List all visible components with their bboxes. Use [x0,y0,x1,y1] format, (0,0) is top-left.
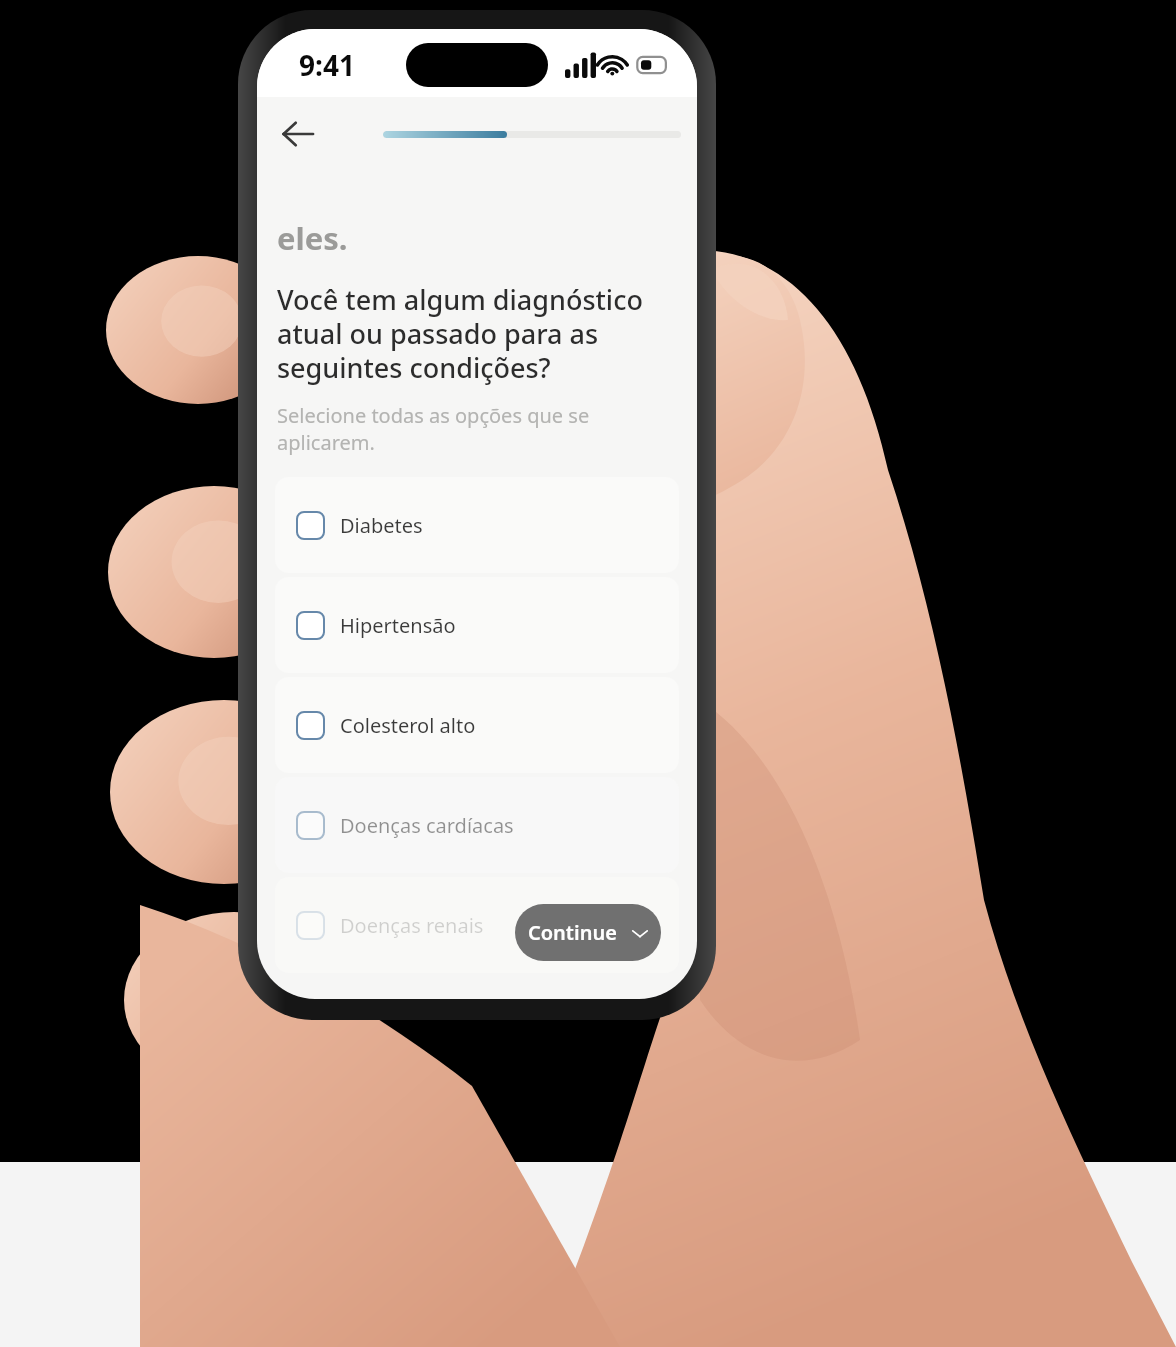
staticText: Doenças renais [340,912,484,939]
button[interactable]: Diabetes [275,477,679,573]
staticText: Você tem algum diagnóstico atual ou pass… [277,281,677,386]
button[interactable]: Continue [515,904,661,961]
button[interactable]: Colesterol alto [275,677,679,773]
button[interactable]: Hipertensão [275,577,679,673]
staticText: Continue [528,919,617,946]
button[interactable]: Doenças cardíacas [275,777,679,873]
staticText: 9:41 [299,46,355,84]
staticText: Doenças cardíacas [340,812,514,839]
staticText: Hipertensão [340,612,456,639]
button[interactable]: Back [269,105,327,163]
staticText: eles. [277,217,348,259]
staticText: Colesterol alto [340,712,476,739]
staticText: Selecione todas as opções que se aplicar… [277,402,677,456]
staticText: Diabetes [340,512,423,539]
button[interactable]: Doenças renais [275,877,679,973]
